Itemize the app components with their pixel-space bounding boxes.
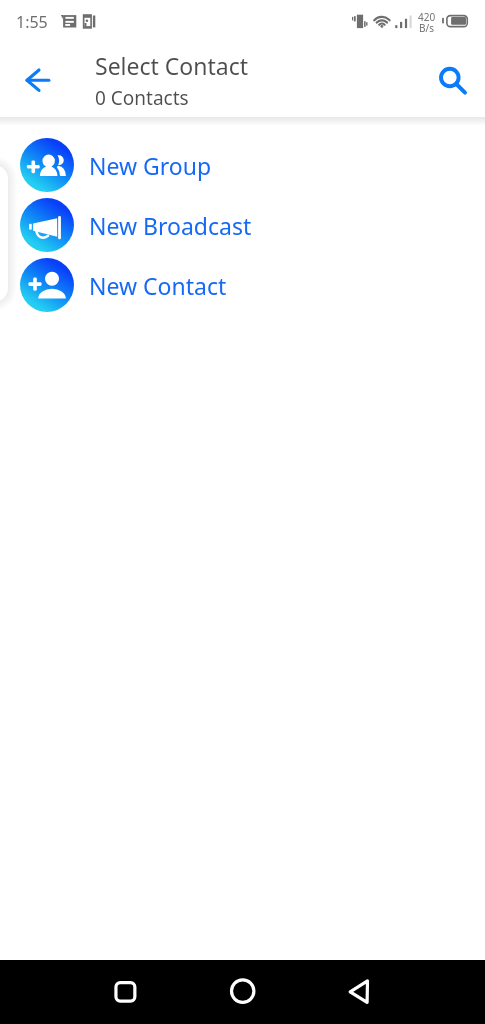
staticText: Select Contact <box>95 50 249 81</box>
button[interactable]: New Broadcast <box>0 195 485 255</box>
staticText: 1:55 <box>16 11 48 33</box>
button[interactable]: Recent apps <box>101 967 149 1015</box>
button[interactable]: Back <box>13 57 61 105</box>
button[interactable]: Home <box>218 967 266 1015</box>
button[interactable]: New Group <box>0 135 485 195</box>
button[interactable]: Search <box>426 53 474 101</box>
button[interactable]: Back <box>336 967 384 1015</box>
staticText: New Group <box>89 150 212 181</box>
staticText: New Broadcast <box>89 210 252 241</box>
staticText: 420 <box>418 10 436 24</box>
staticText: New Contact <box>89 270 227 301</box>
staticText: B/s <box>419 21 435 35</box>
staticText: 0 Contacts <box>95 85 189 111</box>
button[interactable]: New Contact <box>0 255 485 315</box>
